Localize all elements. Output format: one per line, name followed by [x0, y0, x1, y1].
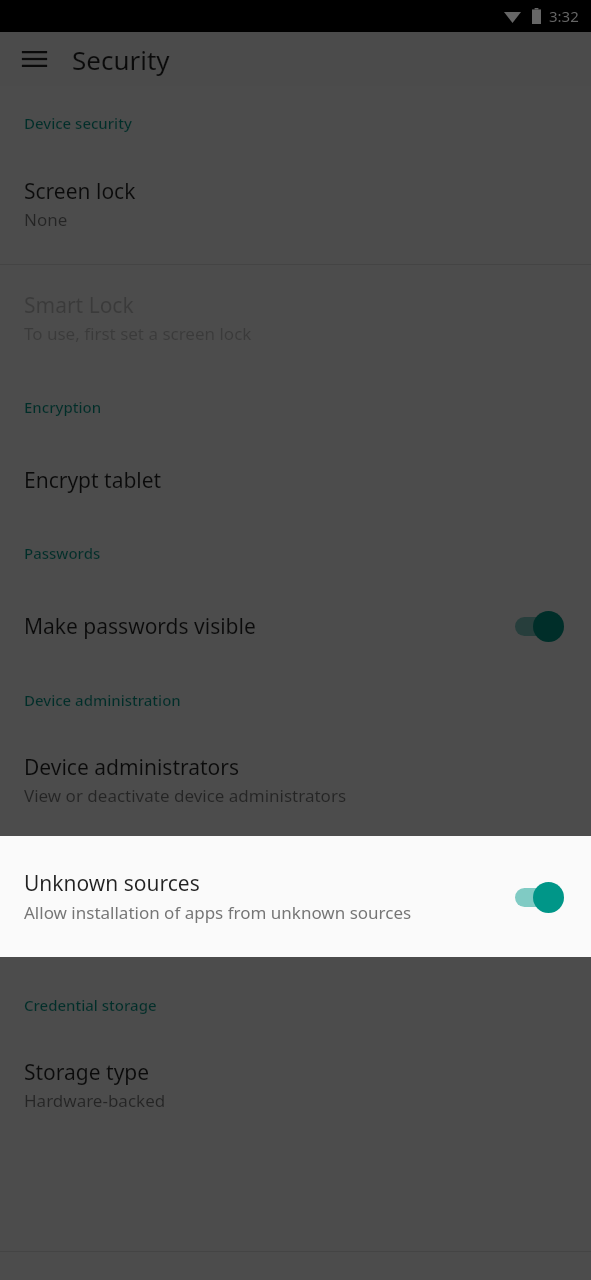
button[interactable]: Screen lock	[0, 133, 591, 231]
staticText: Credential storage	[24, 995, 591, 1015]
staticText: Screen lock	[24, 177, 136, 206]
staticText: Storage type	[24, 1058, 150, 1087]
staticText: To use, first set a screen lock	[24, 322, 252, 345]
staticText: Security	[72, 42, 170, 77]
button[interactable]: Open navigation drawer	[10, 35, 58, 83]
staticText: Passwords	[24, 543, 591, 563]
button[interactable]: Toggle	[513, 880, 567, 914]
staticText: Encrypt tablet	[24, 466, 162, 495]
button[interactable]: Storage type	[0, 1015, 591, 1112]
staticText: Device administrators	[24, 753, 240, 782]
staticText: Allow installation of apps from unknown …	[24, 901, 412, 924]
staticText: Encryption	[24, 397, 591, 417]
staticText: 3:32	[549, 6, 579, 26]
staticText: Smart Lock	[24, 291, 134, 320]
staticText: View or deactivate device administrators	[24, 784, 347, 807]
button[interactable]: Encrypt tablet	[0, 417, 591, 495]
staticText: Device security	[24, 113, 591, 133]
staticText: Hardware-backed	[24, 1089, 166, 1112]
button[interactable]: Device administrators	[0, 710, 591, 807]
staticText: Unknown sources	[24, 869, 200, 898]
staticText: Device administration	[24, 690, 591, 710]
button[interactable]: Toggle	[513, 609, 567, 643]
staticText: None	[24, 208, 68, 231]
button[interactable]: Unknown sources	[0, 836, 591, 957]
staticText: Make passwords visible	[24, 612, 256, 641]
button[interactable]: Make passwords visible	[0, 563, 591, 643]
